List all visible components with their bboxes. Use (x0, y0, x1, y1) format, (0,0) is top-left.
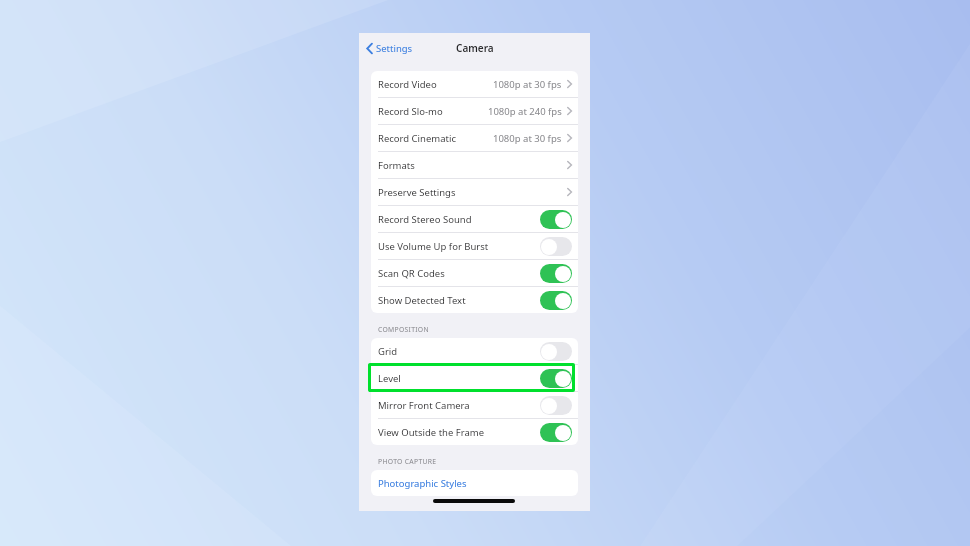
staticText: Show Detected Text (378, 294, 466, 307)
button[interactable]: Show Detected Text (371, 287, 578, 313)
staticText: Grid (378, 345, 398, 358)
button[interactable]: Grid (540, 342, 572, 361)
button[interactable]: Formats (371, 152, 578, 178)
staticText: COMPOSITION (378, 325, 429, 334)
staticText: 1080p at 30 fps (493, 78, 562, 91)
button[interactable]: View Outside the Frame (371, 419, 578, 445)
staticText: Record Slo-mo (378, 105, 443, 118)
staticText: Record Cinematic (378, 132, 456, 145)
button[interactable]: View Outside the Frame (540, 423, 572, 442)
button[interactable]: Show Detected Text (540, 291, 572, 310)
button[interactable]: Record Slo-mo (371, 98, 578, 124)
button[interactable]: Mirror Front Camera (371, 392, 578, 418)
button[interactable]: Record Video (371, 71, 578, 97)
staticText: Scan QR Codes (378, 267, 445, 280)
button[interactable]: Record Stereo Sound (371, 206, 578, 232)
button[interactable]: Record Cinematic (371, 125, 578, 151)
button[interactable]: Level (540, 369, 572, 388)
staticText: Photographic Styles (378, 477, 467, 490)
staticText: Mirror Front Camera (378, 399, 470, 412)
staticText: Preserve Settings (378, 186, 456, 199)
button[interactable]: Photographic Styles (371, 470, 578, 496)
button[interactable]: Mirror Front Camera (540, 396, 572, 415)
button[interactable]: Grid (371, 338, 578, 364)
button[interactable]: Scan QR Codes (540, 264, 572, 283)
button[interactable]: Use Volume Up for Burst (371, 233, 578, 259)
button[interactable]: Use Volume Up for Burst (540, 237, 572, 256)
button[interactable]: Scan QR Codes (371, 260, 578, 286)
staticText: Formats (378, 159, 415, 172)
button[interactable]: Back (363, 38, 416, 59)
button[interactable]: Record Stereo Sound (540, 210, 572, 229)
staticText: Camera (456, 41, 494, 55)
staticText: Settings (376, 42, 413, 55)
button[interactable]: Level (371, 365, 578, 391)
staticText: Record Stereo Sound (378, 213, 472, 226)
button[interactable]: Preserve Settings (371, 179, 578, 205)
staticText: View Outside the Frame (378, 426, 485, 439)
staticText: 1080p at 240 fps (488, 105, 562, 118)
staticText: Use Volume Up for Burst (378, 240, 489, 253)
staticText: Record Video (378, 78, 437, 91)
other: Back (366, 43, 373, 54)
staticText: Level (378, 372, 401, 385)
staticText: PHOTO CAPTURE (378, 457, 437, 466)
staticText: 1080p at 30 fps (493, 132, 562, 145)
